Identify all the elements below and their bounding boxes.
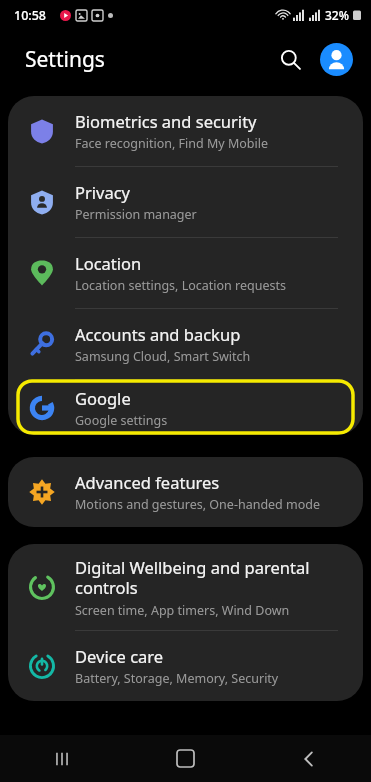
button[interactable]: Location	[8, 238, 363, 308]
staticText: Battery, Storage, Memory, Security	[75, 670, 279, 687]
staticText: Location settings, Location requests	[75, 277, 287, 294]
staticText: Accounts and backup	[75, 323, 241, 345]
button[interactable]: Advanced features	[8, 457, 363, 527]
button[interactable]: Search	[268, 37, 312, 81]
button[interactable]: Account	[316, 39, 356, 79]
staticText: Motions and gestures, One-handed mode	[75, 496, 321, 513]
staticText: Settings	[25, 45, 105, 74]
staticText: Advanced features	[75, 471, 220, 493]
button[interactable]: Accounts and backup	[8, 309, 363, 379]
staticText: 32%	[325, 7, 349, 23]
button[interactable]: Device care	[8, 631, 363, 701]
staticText: 10:58	[14, 7, 47, 24]
staticText: Location	[75, 252, 142, 274]
staticText: Screen time, App timers, Wind Down	[75, 602, 290, 619]
staticText: Samsung Cloud, Smart Switch	[75, 348, 251, 365]
button[interactable]: Digital Wellbeing and parental controls	[8, 544, 363, 630]
button[interactable]: Privacy	[8, 167, 363, 237]
button[interactable]: Back	[247, 735, 371, 782]
button[interactable]: Biometrics and security	[8, 96, 363, 166]
staticText: Privacy	[75, 181, 131, 203]
staticText: Google settings	[75, 412, 168, 429]
button[interactable]: Home	[123, 735, 247, 782]
button[interactable]: Recents	[0, 735, 123, 782]
staticText: Face recognition, Find My Mobile	[75, 135, 269, 152]
button[interactable]: Google	[8, 380, 363, 435]
staticText: Biometrics and security	[75, 110, 257, 132]
staticText: Google	[75, 387, 131, 409]
staticText: Device care	[75, 645, 164, 667]
staticText: Digital Wellbeing and parental controls	[75, 556, 347, 599]
staticText: Permission manager	[75, 206, 197, 223]
